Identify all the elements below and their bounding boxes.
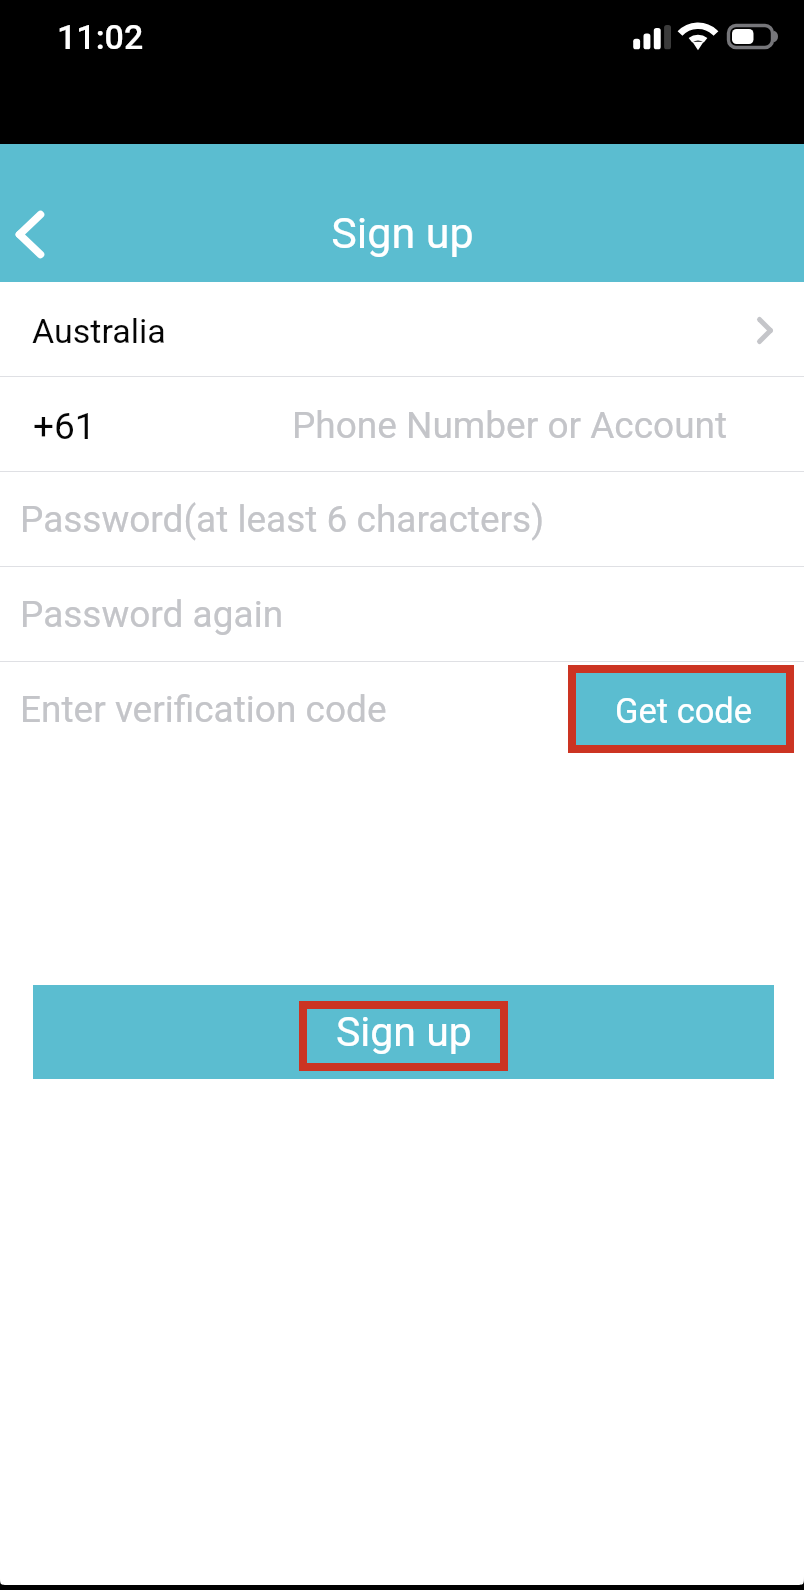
- staticText: Password(at least 6 characters): [20, 498, 545, 541]
- staticText: +61: [33, 405, 96, 448]
- staticText: Sign up: [331, 208, 474, 258]
- button[interactable]: +61: [0, 377, 804, 471]
- staticText: Australia: [32, 311, 166, 351]
- staticText: Sign up: [336, 1008, 472, 1056]
- button[interactable]: Australia: [0, 282, 804, 376]
- other: Choose country: [740, 282, 804, 376]
- staticText: Get code: [615, 691, 753, 731]
- staticText: Password again: [20, 593, 284, 636]
- button[interactable]: Get code: [576, 673, 786, 746]
- button[interactable]: Enter verification code: [0, 662, 804, 756]
- button[interactable]: Password again: [0, 567, 804, 661]
- staticText: Enter verification code: [20, 688, 387, 731]
- button[interactable]: Back: [0, 190, 78, 282]
- button[interactable]: Sign up: [33, 985, 774, 1079]
- staticText: 11:02: [57, 17, 144, 57]
- button[interactable]: Password(at least 6 characters): [0, 472, 804, 566]
- staticText: Phone Number or Account: [292, 404, 728, 447]
